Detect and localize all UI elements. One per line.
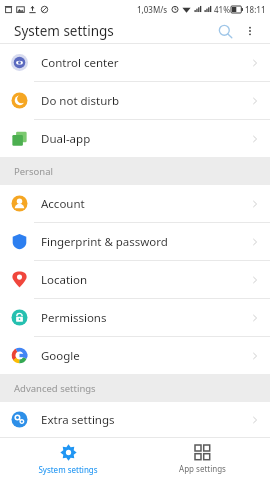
staticText: Personal: [14, 165, 53, 178]
button[interactable]: Control center: [0, 44, 270, 81]
button[interactable]: Google: [0, 337, 270, 374]
staticText: Location: [41, 272, 88, 288]
staticText: Fingerprint & password: [41, 234, 168, 250]
staticText: System settings: [38, 464, 98, 475]
button[interactable]: Fingerprint & password: [0, 223, 270, 260]
button[interactable]: Extra settings: [0, 402, 270, 437]
button[interactable]: System settings: [0, 438, 135, 480]
staticText: Advanced settings: [14, 382, 96, 395]
button[interactable]: Search: [212, 18, 238, 44]
button[interactable]: Account: [0, 185, 270, 222]
staticText: Do not disturb: [41, 93, 120, 109]
staticText: System settings: [14, 22, 114, 40]
button[interactable]: Dual-app: [0, 120, 270, 157]
staticText: Account: [41, 196, 85, 212]
staticText: Extra settings: [41, 412, 115, 428]
button[interactable]: Permissions: [0, 299, 270, 336]
staticText: Dual-app: [41, 131, 91, 147]
staticText: Permissions: [41, 310, 107, 326]
button[interactable]: More options: [238, 19, 262, 43]
staticText: Control center: [41, 55, 119, 71]
button[interactable]: Location: [0, 261, 270, 298]
button[interactable]: App settings: [135, 438, 270, 480]
staticText: 18:11: [245, 4, 266, 15]
staticText: 41%: [214, 4, 230, 15]
button[interactable]: Do not disturb: [0, 82, 270, 119]
staticText: App settings: [179, 463, 226, 474]
staticText: Google: [41, 348, 80, 364]
staticText: 1,03M/s: [137, 4, 168, 15]
